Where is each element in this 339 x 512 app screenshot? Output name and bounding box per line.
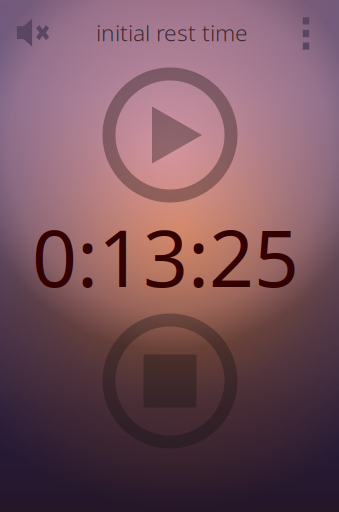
button[interactable]: Mute <box>10 9 58 57</box>
staticText: initial rest time <box>96 17 248 47</box>
button[interactable]: More options <box>286 9 326 57</box>
staticText: 0:13:25 <box>32 204 299 309</box>
button[interactable]: Stop timer <box>102 313 237 448</box>
button[interactable]: Start timer <box>102 67 237 202</box>
